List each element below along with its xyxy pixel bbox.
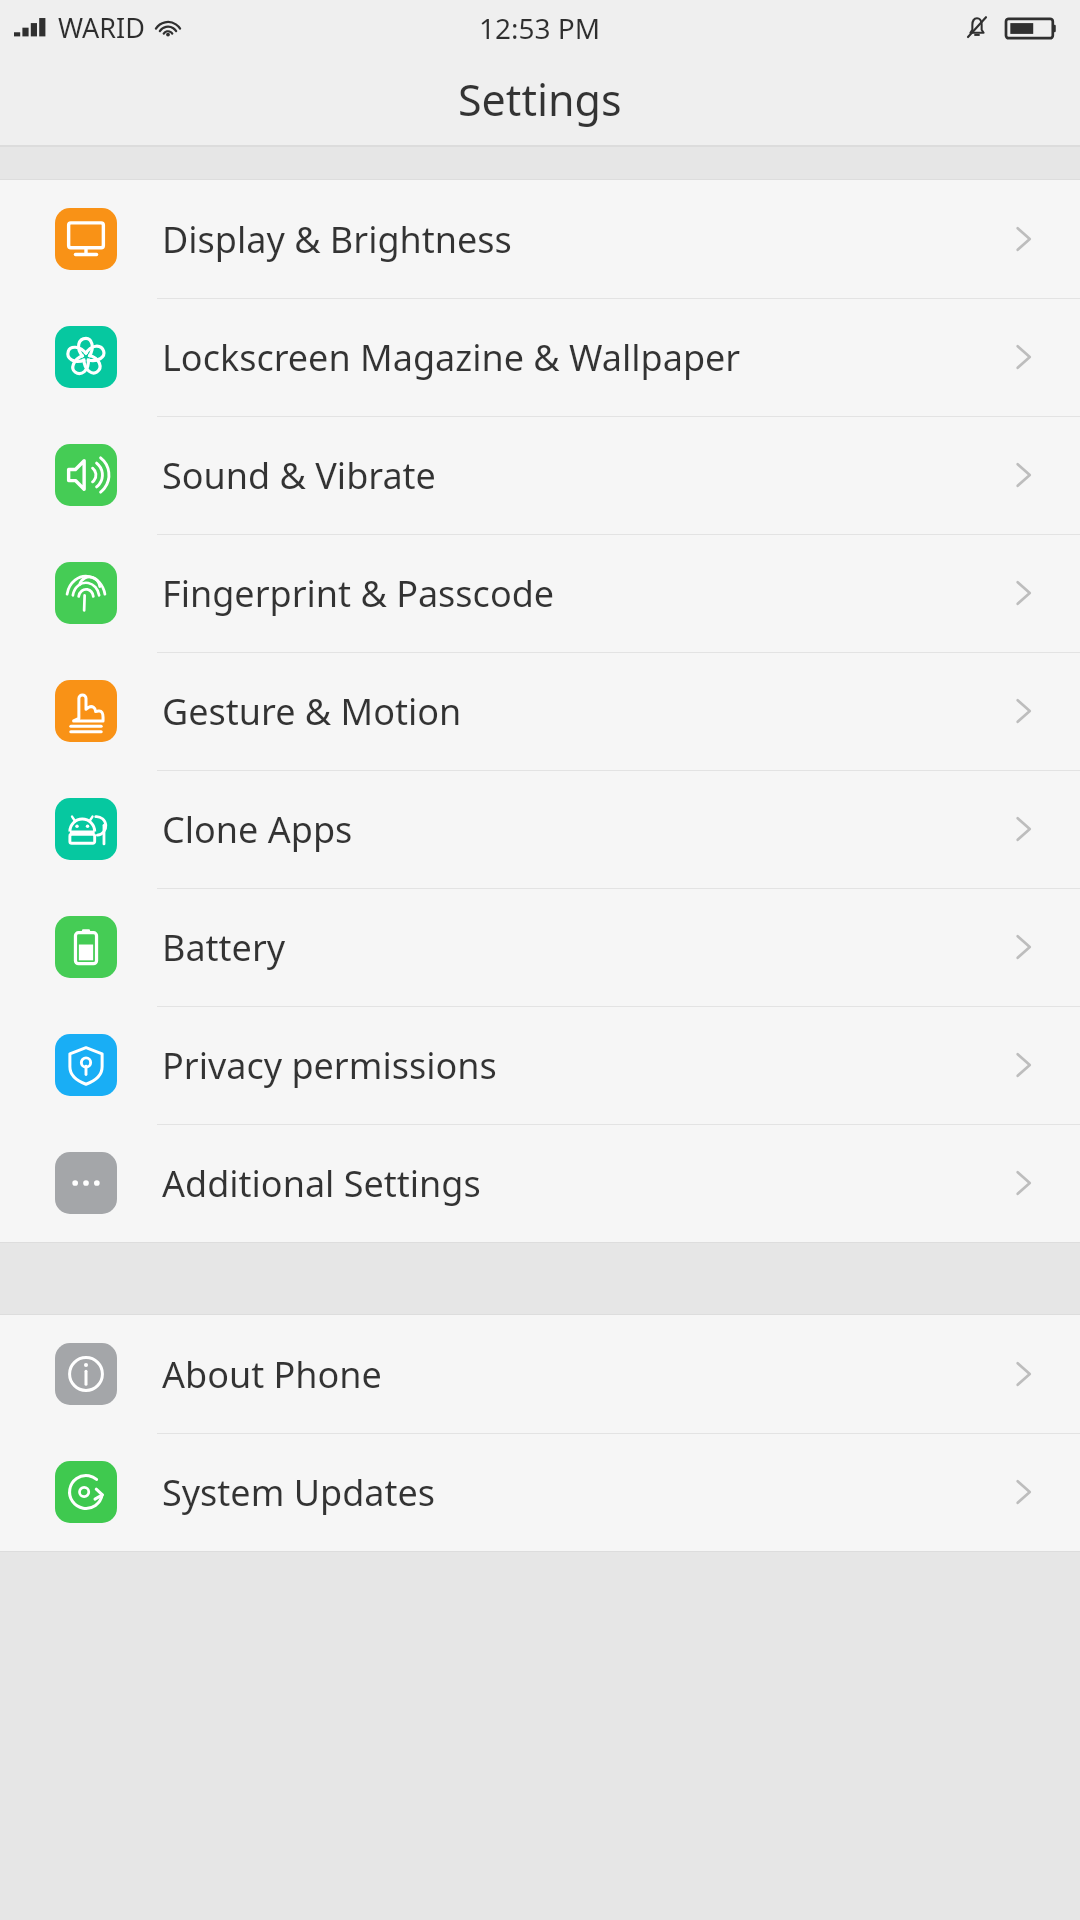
staticText: Privacy permissions [162, 1041, 497, 1090]
button[interactable]: Gesture & Motion [0, 652, 1080, 770]
staticText: WARID [58, 9, 145, 46]
staticText: Lockscreen Magazine & Wallpaper [162, 333, 741, 382]
staticText: Fingerprint & Passcode [162, 569, 555, 618]
staticText: About Phone [162, 1350, 382, 1399]
staticText: Settings [458, 70, 622, 129]
button[interactable]: Sound & Vibrate [0, 416, 1080, 534]
button[interactable]: Additional Settings [0, 1124, 1080, 1242]
button[interactable]: About Phone [0, 1315, 1080, 1433]
staticText: Additional Settings [162, 1159, 481, 1208]
staticText: Gesture & Motion [162, 687, 462, 736]
button[interactable]: Display & Brightness [0, 180, 1080, 298]
staticText: Clone Apps [162, 805, 353, 854]
button[interactable]: Clone Apps [0, 770, 1080, 888]
staticText: Display & Brightness [162, 215, 512, 264]
button[interactable]: Lockscreen Magazine & Wallpaper [0, 298, 1080, 416]
button[interactable]: Privacy permissions [0, 1006, 1080, 1124]
staticText: 12:53 PM [479, 9, 601, 47]
button[interactable]: Fingerprint & Passcode [0, 534, 1080, 652]
button[interactable]: Battery [0, 888, 1080, 1006]
staticText: Sound & Vibrate [162, 451, 436, 500]
button[interactable]: System Updates [0, 1433, 1080, 1551]
staticText: System Updates [162, 1468, 436, 1517]
staticText: Battery [162, 923, 286, 972]
